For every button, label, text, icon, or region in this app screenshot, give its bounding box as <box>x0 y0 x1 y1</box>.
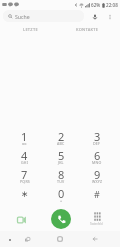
staticText: PQRS <box>20 179 30 184</box>
staticText: 22:08 <box>106 2 118 8</box>
button[interactable]: 0 <box>43 184 79 203</box>
staticText: Tastenfeld <box>90 222 103 226</box>
button[interactable]: Recent apps <box>22 234 32 244</box>
staticText: ABC <box>57 141 65 146</box>
staticText: 4 <box>21 148 28 163</box>
staticText: TUV <box>57 179 65 184</box>
button[interactable]: 4 <box>6 146 43 165</box>
staticText: MNO <box>92 160 102 165</box>
staticText: # <box>94 188 100 200</box>
staticText: 2 <box>58 129 65 144</box>
staticText: ∗ <box>21 189 29 199</box>
button[interactable]: Hide navigation bar <box>5 235 14 244</box>
button[interactable]: Video call <box>13 212 29 228</box>
button[interactable]: 9 <box>79 165 115 184</box>
staticText: 62% <box>91 2 101 8</box>
button[interactable]: LETZTE <box>6 24 55 34</box>
staticText: WXYZ <box>92 179 103 184</box>
staticText: GHI <box>21 160 29 165</box>
button[interactable]: More options <box>104 10 116 23</box>
button[interactable]: ∗ <box>6 184 43 203</box>
staticText: DEF <box>93 141 101 146</box>
button[interactable]: Home <box>54 233 66 245</box>
staticText: 6 <box>94 148 101 163</box>
staticText: 7 <box>21 167 28 182</box>
button[interactable]: 7 <box>6 165 43 184</box>
button[interactable]: Call <box>51 209 71 229</box>
staticText: JKL <box>58 160 64 165</box>
button[interactable]: Suche <box>3 10 84 22</box>
staticText: LETZTE <box>23 27 38 32</box>
button[interactable]: 2 <box>43 127 79 146</box>
button[interactable]: Keypad <box>88 212 105 226</box>
staticText: Suche <box>15 13 30 20</box>
button[interactable]: 1 <box>6 127 43 146</box>
staticText: KONTAKTE <box>76 27 99 32</box>
button[interactable]: # <box>79 184 115 203</box>
staticText: oo <box>22 141 27 146</box>
button[interactable]: 8 <box>43 165 79 184</box>
staticText: 9 <box>94 167 101 182</box>
button[interactable]: Voice search <box>88 10 102 23</box>
button[interactable]: 5 <box>43 146 79 165</box>
staticText: 0 <box>58 186 65 201</box>
button[interactable]: 6 <box>79 146 115 165</box>
button[interactable]: Back <box>89 233 101 245</box>
button[interactable]: KONTAKTE <box>63 24 112 34</box>
staticText: + <box>60 198 63 203</box>
staticText: 1 <box>21 129 28 144</box>
staticText: 8 <box>58 167 65 182</box>
button[interactable]: 3 <box>79 127 115 146</box>
staticText: 3 <box>94 129 101 144</box>
staticText: 5 <box>58 148 65 163</box>
